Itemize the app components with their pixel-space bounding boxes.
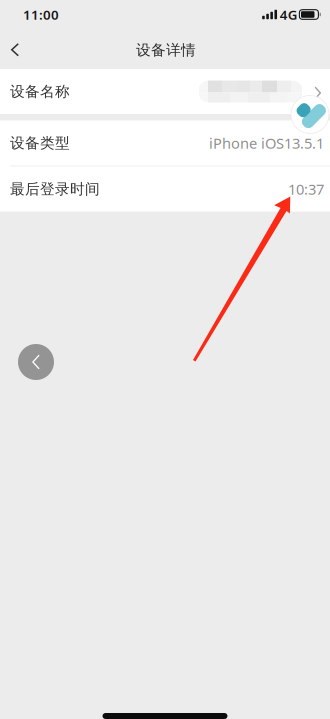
staticText: 11:00 — [23, 6, 59, 23]
button[interactable]: 设备名称 — [0, 69, 330, 114]
staticText: 设备类型 — [10, 134, 70, 152]
staticText: 设备名称 — [10, 82, 70, 100]
button[interactable]: Back — [18, 344, 54, 380]
staticText: 4G — [280, 6, 298, 23]
staticText: iPhone iOS13.5.1 — [209, 133, 324, 153]
staticText: 设备详情 — [136, 41, 196, 59]
staticText: 最后登录时间 — [10, 180, 100, 198]
button[interactable]: Back — [0, 28, 30, 70]
staticText: 10:37 — [288, 179, 324, 199]
